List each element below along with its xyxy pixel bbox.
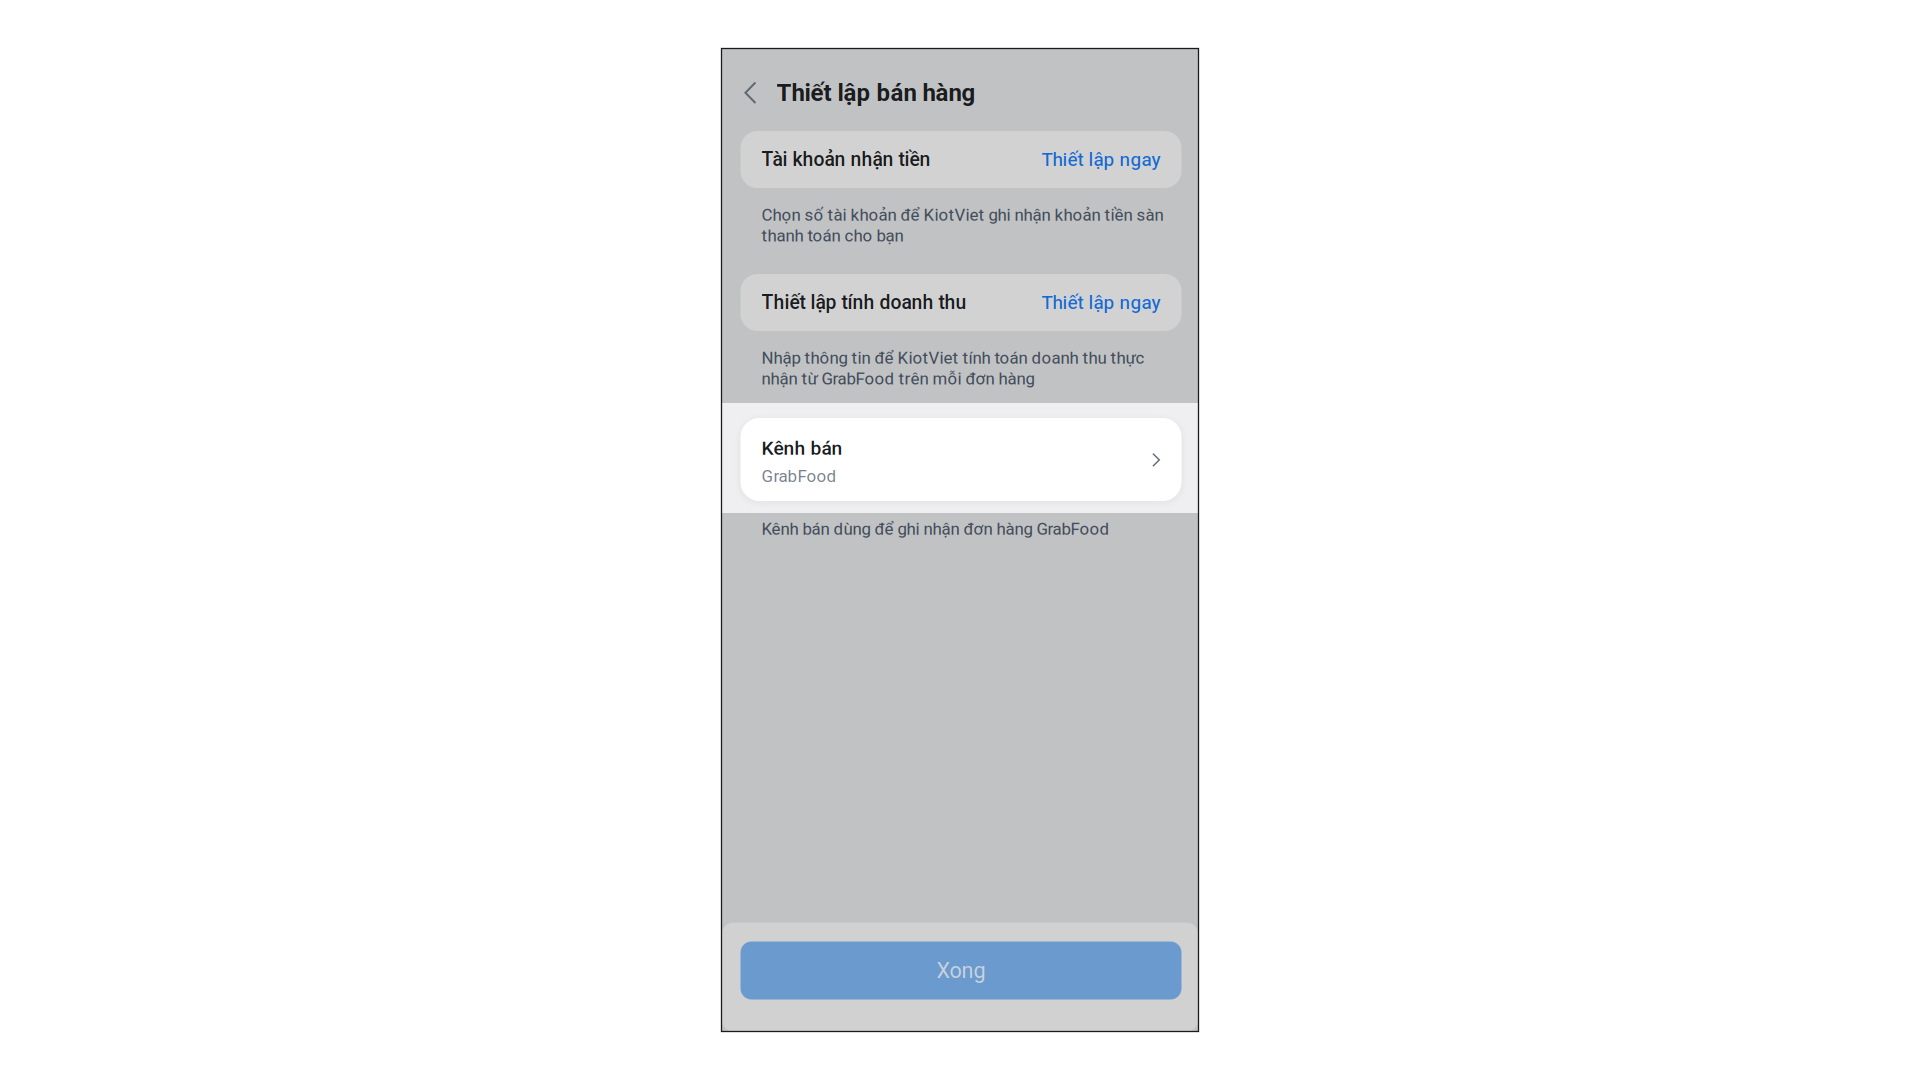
staticText: Thiết lập ngay: [1041, 291, 1160, 314]
staticText: Tài khoản nhận tiền: [761, 148, 930, 171]
staticText: Thiết lập bán hàng: [776, 79, 975, 107]
staticText: Thiết lập ngay: [1041, 148, 1160, 171]
button[interactable]: Thiết lập tính doanh thu: [721, 274, 1198, 331]
button[interactable]: Kênh bán: [740, 418, 1181, 501]
staticText: Thiết lập tính doanh thu: [761, 291, 966, 314]
staticText: Nhập thông tin để KiotViet tính toán doa…: [761, 348, 1144, 389]
staticText: GrabFood: [761, 466, 836, 486]
button[interactable]: Back: [734, 71, 766, 115]
staticText: Kênh bán: [761, 437, 842, 459]
button[interactable]: Tài khoản nhận tiền: [721, 131, 1198, 188]
staticText: Kênh bán dùng để ghi nhận đơn hàng GrabF…: [761, 519, 1109, 539]
staticText: Chọn số tài khoản để KiotViet ghi nhận k…: [761, 205, 1163, 246]
button[interactable]: Xong: [740, 941, 1181, 999]
staticText: Xong: [936, 958, 985, 983]
